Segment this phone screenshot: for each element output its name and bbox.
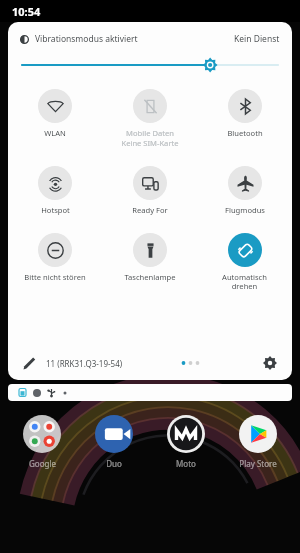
button[interactable]: Duo	[80, 415, 148, 469]
button[interactable]: Brightness	[22, 56, 278, 74]
button[interactable]: Ready For	[102, 164, 197, 217]
staticText: Mobile Daten	[126, 128, 174, 138]
staticText: Ready For	[132, 205, 168, 215]
staticText: Automatisch drehen	[222, 272, 267, 292]
button[interactable]: Play Store	[224, 415, 292, 469]
staticText: Bitte nicht stören	[24, 272, 86, 282]
staticText: Kein Dienst	[234, 33, 280, 45]
staticText: Vibrationsmodus aktiviert	[35, 33, 138, 45]
staticText: Flugmodus	[225, 205, 265, 215]
staticText: Duo	[106, 458, 122, 469]
button[interactable]: Hotspot	[8, 164, 102, 217]
staticText: Taschenlampe	[124, 272, 176, 282]
staticText: Google	[29, 458, 56, 469]
staticText: 10:54	[12, 4, 41, 19]
button[interactable]: Bitte nicht stören	[8, 231, 102, 284]
staticText: 11 (RRK31.Q3-19-54)	[46, 358, 123, 369]
button[interactable]: Google	[8, 415, 76, 469]
button[interactable]: Notification shade	[8, 384, 292, 401]
button[interactable]: WLAN	[8, 87, 102, 140]
button[interactable]: Moto	[152, 415, 220, 469]
button[interactable]: Mobile Daten	[102, 87, 197, 150]
button[interactable]: Settings	[260, 353, 280, 373]
staticText: Moto	[176, 458, 196, 469]
staticText: Bluetooth	[227, 128, 263, 138]
button[interactable]: Flugmodus	[197, 164, 292, 217]
staticText: Play Store	[239, 458, 277, 469]
staticText: Hotspot	[41, 205, 70, 215]
button[interactable]: Taschenlampe	[102, 231, 197, 284]
button[interactable]: Bluetooth	[197, 87, 292, 140]
staticText: WLAN	[44, 128, 66, 138]
staticText: Keine SIM-Karte	[121, 138, 179, 148]
button[interactable]: Automatisch drehen	[197, 231, 292, 294]
button[interactable]: Edit tiles	[20, 354, 38, 372]
